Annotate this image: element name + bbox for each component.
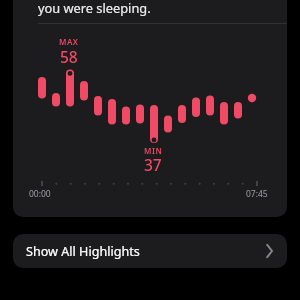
staticText: 07:45	[246, 188, 268, 200]
staticText: 00:00	[29, 188, 51, 200]
staticText: 37	[144, 154, 162, 175]
staticText: MAX	[59, 36, 79, 47]
button[interactable]: Show All Highlights	[13, 234, 287, 268]
staticText: 58	[60, 46, 78, 67]
staticText: Show All Highlights	[26, 243, 140, 260]
staticText: you were sleeping.	[38, 0, 151, 16]
staticText: MIN	[144, 145, 163, 156]
